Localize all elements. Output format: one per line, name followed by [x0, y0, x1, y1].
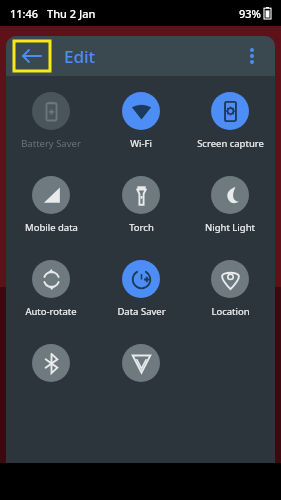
button[interactable]: Wi-Fi: [97, 90, 185, 152]
button[interactable]: Location: [186, 258, 274, 320]
button[interactable]: Back: [14, 41, 50, 71]
button[interactable]: VPN: [97, 342, 185, 384]
staticText: Auto-rotate: [25, 305, 77, 318]
button[interactable]: Night Light: [186, 174, 274, 236]
staticText: Wi-Fi: [130, 137, 152, 150]
button[interactable]: Screen capture: [186, 90, 274, 152]
button[interactable]: Torch: [97, 174, 185, 236]
staticText: Night Light: [205, 221, 255, 234]
staticText: Edit: [64, 45, 96, 68]
button[interactable]: Auto-rotate: [7, 258, 95, 320]
button[interactable]: Mobile data: [7, 174, 95, 236]
staticText: Data Saver: [117, 305, 166, 318]
staticText: Screen capture: [197, 137, 264, 150]
staticText: Location: [211, 305, 250, 318]
staticText: 11:46: [10, 6, 39, 21]
staticText: Torch: [129, 221, 154, 234]
staticText: Mobile data: [25, 221, 78, 234]
staticText: 93%: [239, 6, 261, 21]
button[interactable]: Bluetooth: [7, 342, 95, 384]
staticText: Thu 2 Jan: [47, 6, 96, 21]
button[interactable]: Data Saver: [97, 258, 185, 320]
staticText: Battery Saver: [21, 137, 81, 150]
button[interactable]: Battery Saver: [7, 90, 95, 152]
button[interactable]: More options: [237, 41, 267, 71]
